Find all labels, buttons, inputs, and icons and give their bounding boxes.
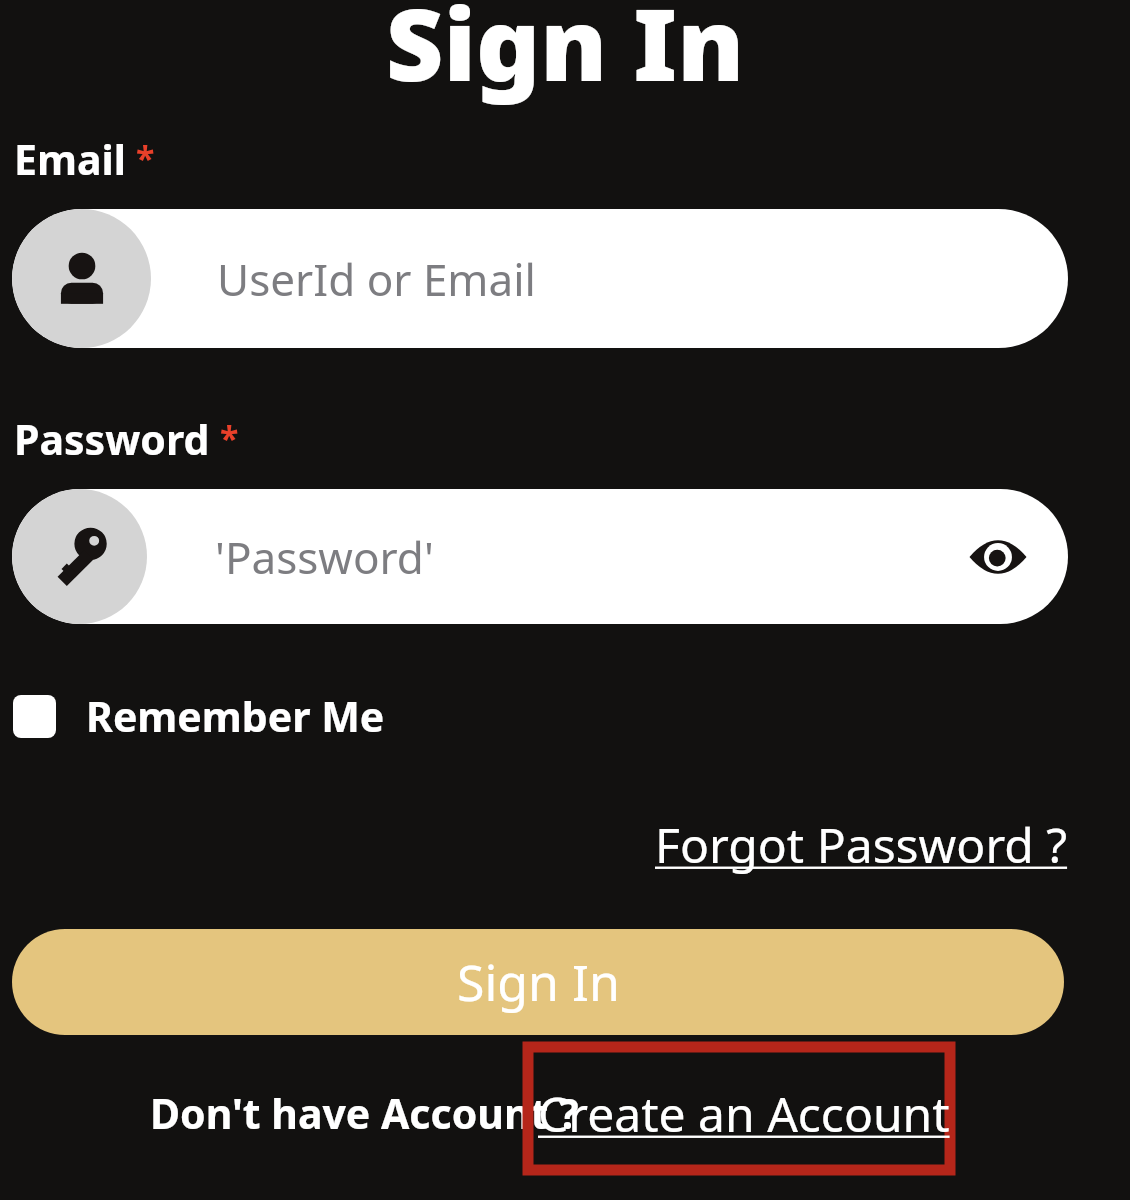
staticText: Forgot Password ? (655, 812, 1068, 877)
staticText: Don't have Account ? (150, 1085, 579, 1141)
button[interactable]: Forgot Password ? (655, 812, 1068, 877)
button[interactable]: Sign In (12, 929, 1064, 1035)
staticText: * (136, 135, 155, 181)
staticText: Create an Account (538, 1081, 950, 1146)
button[interactable]: UserId or Email (12, 209, 1068, 348)
staticText: Email (14, 131, 126, 187)
staticText: * (220, 415, 239, 461)
button[interactable]: Remember Me (13, 688, 385, 744)
staticText: Sign In (0, 0, 1130, 110)
button[interactable]: Create an Account (538, 1081, 950, 1146)
button[interactable]: 'Password' (12, 489, 1068, 624)
staticText: 'Password' (215, 527, 434, 587)
staticText: Sign In (457, 948, 620, 1016)
button[interactable]: Show password (956, 515, 1040, 599)
staticText: Password (14, 411, 210, 467)
staticText: Remember Me (86, 688, 385, 744)
staticText: UserId or Email (217, 249, 536, 309)
